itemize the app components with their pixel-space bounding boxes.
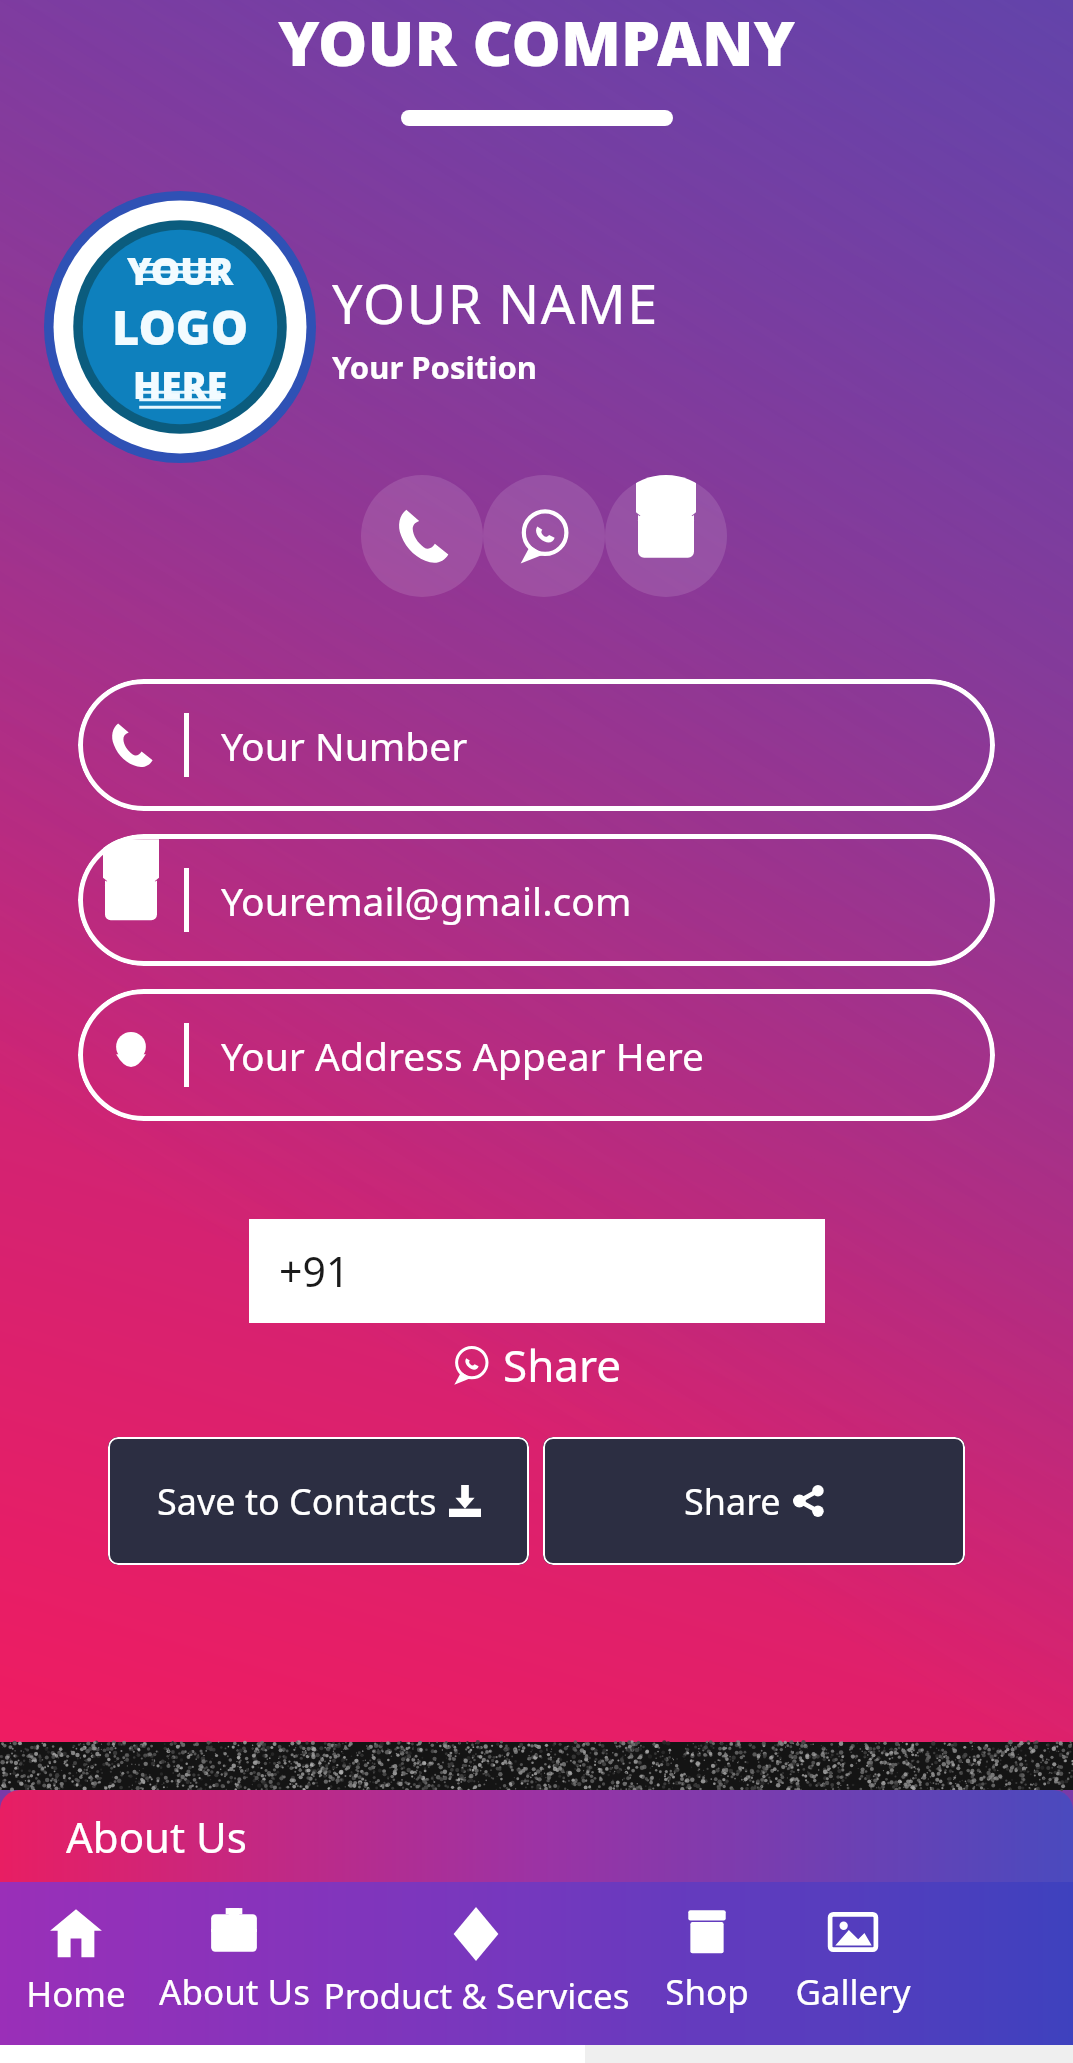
staticText: YOUR [127, 245, 234, 295]
button[interactable]: Product & Services [316, 1906, 636, 2020]
staticText: Share [684, 1477, 781, 1526]
button[interactable]: Email [605, 475, 727, 597]
button[interactable]: Your Address Appear Here [78, 989, 995, 1121]
staticText: YOUR NAME [332, 266, 659, 340]
button[interactable]: About Us [152, 1906, 316, 2016]
staticText: Gallery [795, 1968, 911, 2016]
button[interactable]: WhatsApp [483, 475, 605, 597]
staticText: +91 [279, 1243, 350, 1299]
button[interactable]: Share [441, 1331, 632, 1399]
staticText: Product & Services [323, 1972, 630, 2020]
staticText: About Us [159, 1968, 310, 2016]
staticText: Shop [665, 1968, 749, 2016]
staticText: YOUR COMPANY [0, 0, 1073, 84]
button[interactable]: Call [361, 475, 483, 597]
button[interactable]: Youremail@gmail.com [78, 834, 995, 966]
staticText: About Us [66, 1808, 247, 1865]
staticText: Save to Contacts [157, 1477, 437, 1526]
staticText: Your Address Appear Here [221, 1029, 705, 1082]
button[interactable]: Save to Contacts [108, 1437, 529, 1565]
staticText: Youremail@gmail.com [221, 874, 632, 927]
button[interactable]: +91 [249, 1219, 825, 1323]
button[interactable]: About Us [0, 1790, 1073, 1882]
staticText: HERE [133, 359, 228, 409]
button[interactable]: Share [543, 1437, 965, 1565]
staticText: LOGO [112, 295, 249, 359]
button[interactable]: Home [0, 1906, 152, 2018]
staticText: Share [503, 1335, 622, 1395]
button[interactable]: Gallery [778, 1906, 928, 2016]
button[interactable]: Your Number [78, 679, 995, 811]
button[interactable]: Shop [636, 1906, 778, 2016]
staticText: Your Position [332, 346, 538, 388]
staticText: Your Number [221, 719, 468, 772]
staticText: Home [26, 1970, 126, 2018]
